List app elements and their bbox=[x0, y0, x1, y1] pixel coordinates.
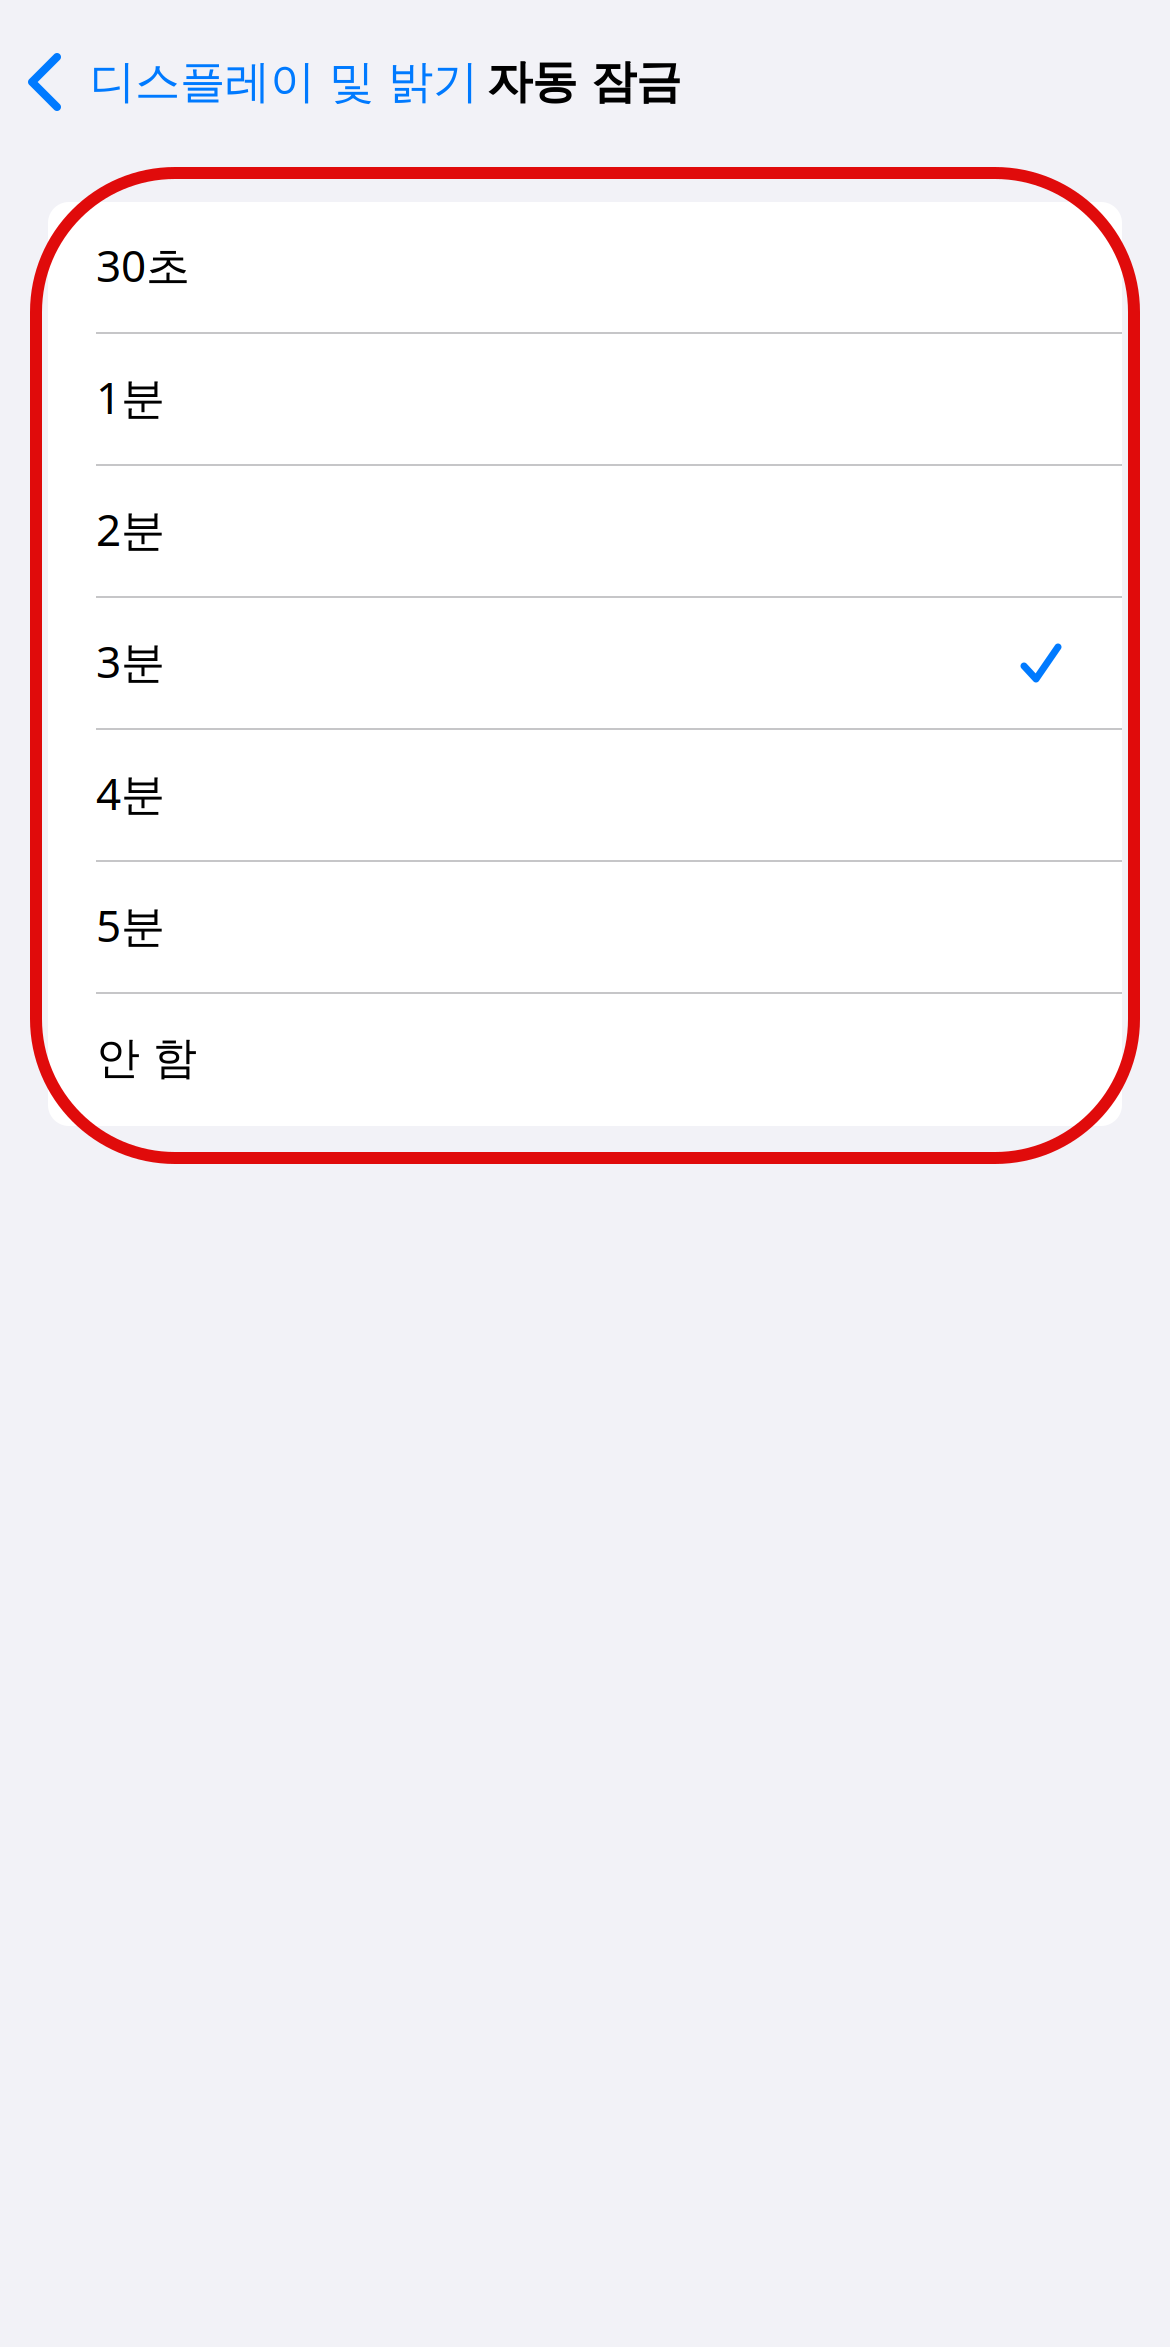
button[interactable]: 디스플레이 및 밝기 bbox=[0, 53, 478, 111]
staticText: 2분 bbox=[96, 500, 165, 558]
staticText: 4분 bbox=[96, 764, 165, 822]
button[interactable]: 5분 bbox=[48, 862, 1122, 994]
button[interactable]: 4분 bbox=[48, 730, 1122, 862]
staticText: 안 함 bbox=[96, 1031, 197, 1085]
staticText: 3분 bbox=[96, 632, 165, 690]
button[interactable]: 안 함 bbox=[48, 994, 1122, 1126]
staticText: 자동 잠금 bbox=[487, 54, 681, 110]
button[interactable]: 30초 bbox=[48, 202, 1122, 334]
staticText: 디스플레이 및 밝기 bbox=[90, 54, 478, 110]
staticText: 5분 bbox=[96, 896, 165, 954]
button[interactable]: 3분 bbox=[48, 598, 1122, 730]
staticText: 1분 bbox=[96, 368, 165, 426]
staticText: 30초 bbox=[96, 236, 190, 294]
button[interactable]: 2분 bbox=[48, 466, 1122, 598]
button[interactable]: 1분 bbox=[48, 334, 1122, 466]
